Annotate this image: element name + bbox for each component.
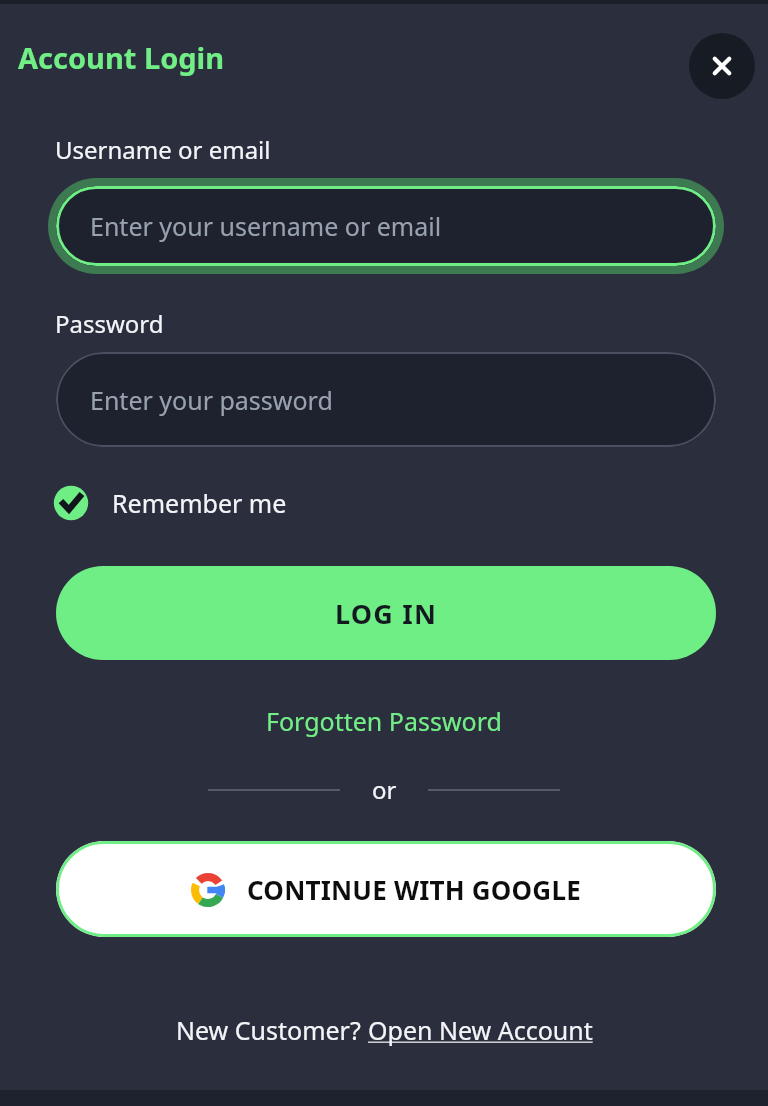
staticText: Enter your password xyxy=(90,383,333,417)
staticText: Remember me xyxy=(112,486,287,520)
button[interactable]: Account Login xyxy=(18,38,225,77)
button[interactable]: Remember me xyxy=(50,482,287,524)
button[interactable]: Enter your password xyxy=(56,352,716,447)
staticText: or xyxy=(372,773,397,806)
button[interactable]: Forgotten Password xyxy=(258,700,510,742)
staticText: Enter your username or email xyxy=(90,209,442,243)
staticText: New Customer? xyxy=(176,1013,368,1047)
button[interactable]: CONTINUE WITH GOOGLE xyxy=(56,841,716,937)
button[interactable]: LOG IN xyxy=(56,566,716,660)
staticText: CONTINUE WITH GOOGLE xyxy=(247,872,581,907)
button[interactable]: Enter your username or email xyxy=(48,178,724,274)
staticText: Account Login xyxy=(18,38,225,77)
button[interactable]: Close xyxy=(689,33,755,99)
staticText: Username or email xyxy=(55,133,271,166)
staticText: Forgotten Password xyxy=(266,704,502,738)
staticText: Password xyxy=(55,307,164,340)
button[interactable]: Open New Account xyxy=(368,1013,593,1047)
staticText: LOG IN xyxy=(335,595,438,632)
staticText: Open New Account xyxy=(368,1013,593,1047)
